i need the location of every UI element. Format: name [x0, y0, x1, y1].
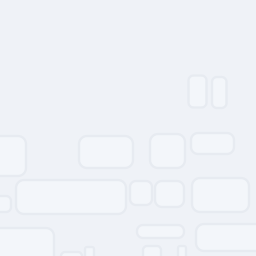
button[interactable]: Card 2	[79, 136, 133, 168]
button[interactable]: Card 16	[178, 246, 186, 256]
button[interactable]: Card 3	[150, 134, 185, 168]
button[interactable]: Card 5	[0, 196, 11, 212]
button[interactable]: Card 9	[192, 178, 249, 212]
button[interactable]: Card 15	[143, 246, 161, 256]
button[interactable]: Card 11	[137, 225, 184, 238]
button[interactable]: Card 1	[0, 136, 26, 176]
button[interactable]: Card 12	[196, 224, 256, 251]
button[interactable]: Card 6	[16, 180, 126, 214]
button[interactable]: Card 8	[155, 181, 184, 207]
button[interactable]: Card 14	[85, 247, 94, 256]
button[interactable]: Card 13	[61, 252, 82, 256]
button[interactable]: Key 2	[212, 77, 226, 108]
button[interactable]: Key 1	[188, 75, 206, 107]
button[interactable]: Card 4	[191, 133, 234, 154]
button[interactable]: Card 7	[130, 181, 152, 205]
